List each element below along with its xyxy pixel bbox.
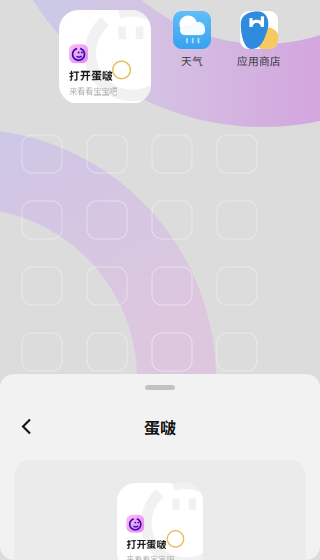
button[interactable]: 应用商店 — [237, 11, 281, 68]
button[interactable]: 打开蛋啵 — [59, 10, 151, 104]
staticText: 来看看宝宝吧 — [126, 553, 174, 560]
button[interactable]: 天气 — [173, 11, 211, 68]
staticText: 蛋啵 — [144, 415, 176, 439]
staticText: 天气 — [181, 53, 203, 68]
staticText: 应用商店 — [237, 53, 281, 68]
button[interactable]: 返回 — [13, 410, 41, 443]
staticText: 来看看宝宝吧 — [69, 85, 117, 97]
staticText: 打开蛋啵 — [69, 67, 113, 83]
staticText: 打开蛋啵 — [126, 536, 166, 551]
